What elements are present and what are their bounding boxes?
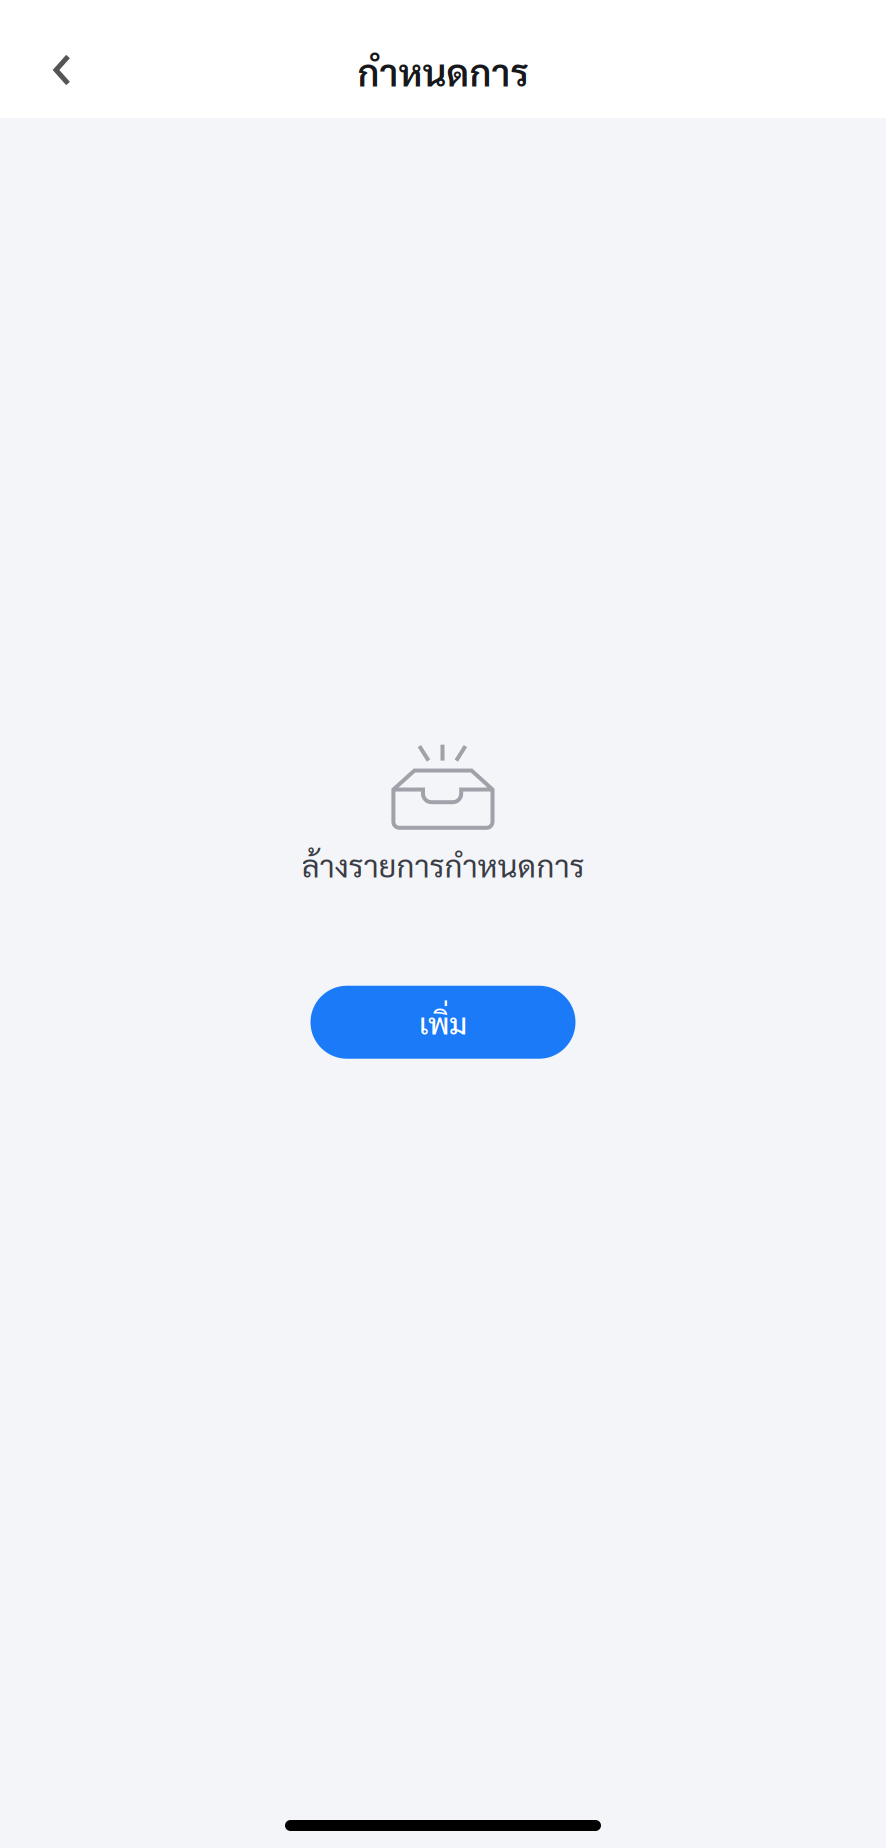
staticText: ล้างรายการกำหนดการ [301, 844, 584, 885]
button[interactable]: เพิ่ม [310, 986, 575, 1059]
staticText: กำหนดการ [357, 47, 528, 95]
staticText: เพิ่ม [419, 1003, 467, 1041]
button[interactable]: Back [16, 24, 108, 116]
